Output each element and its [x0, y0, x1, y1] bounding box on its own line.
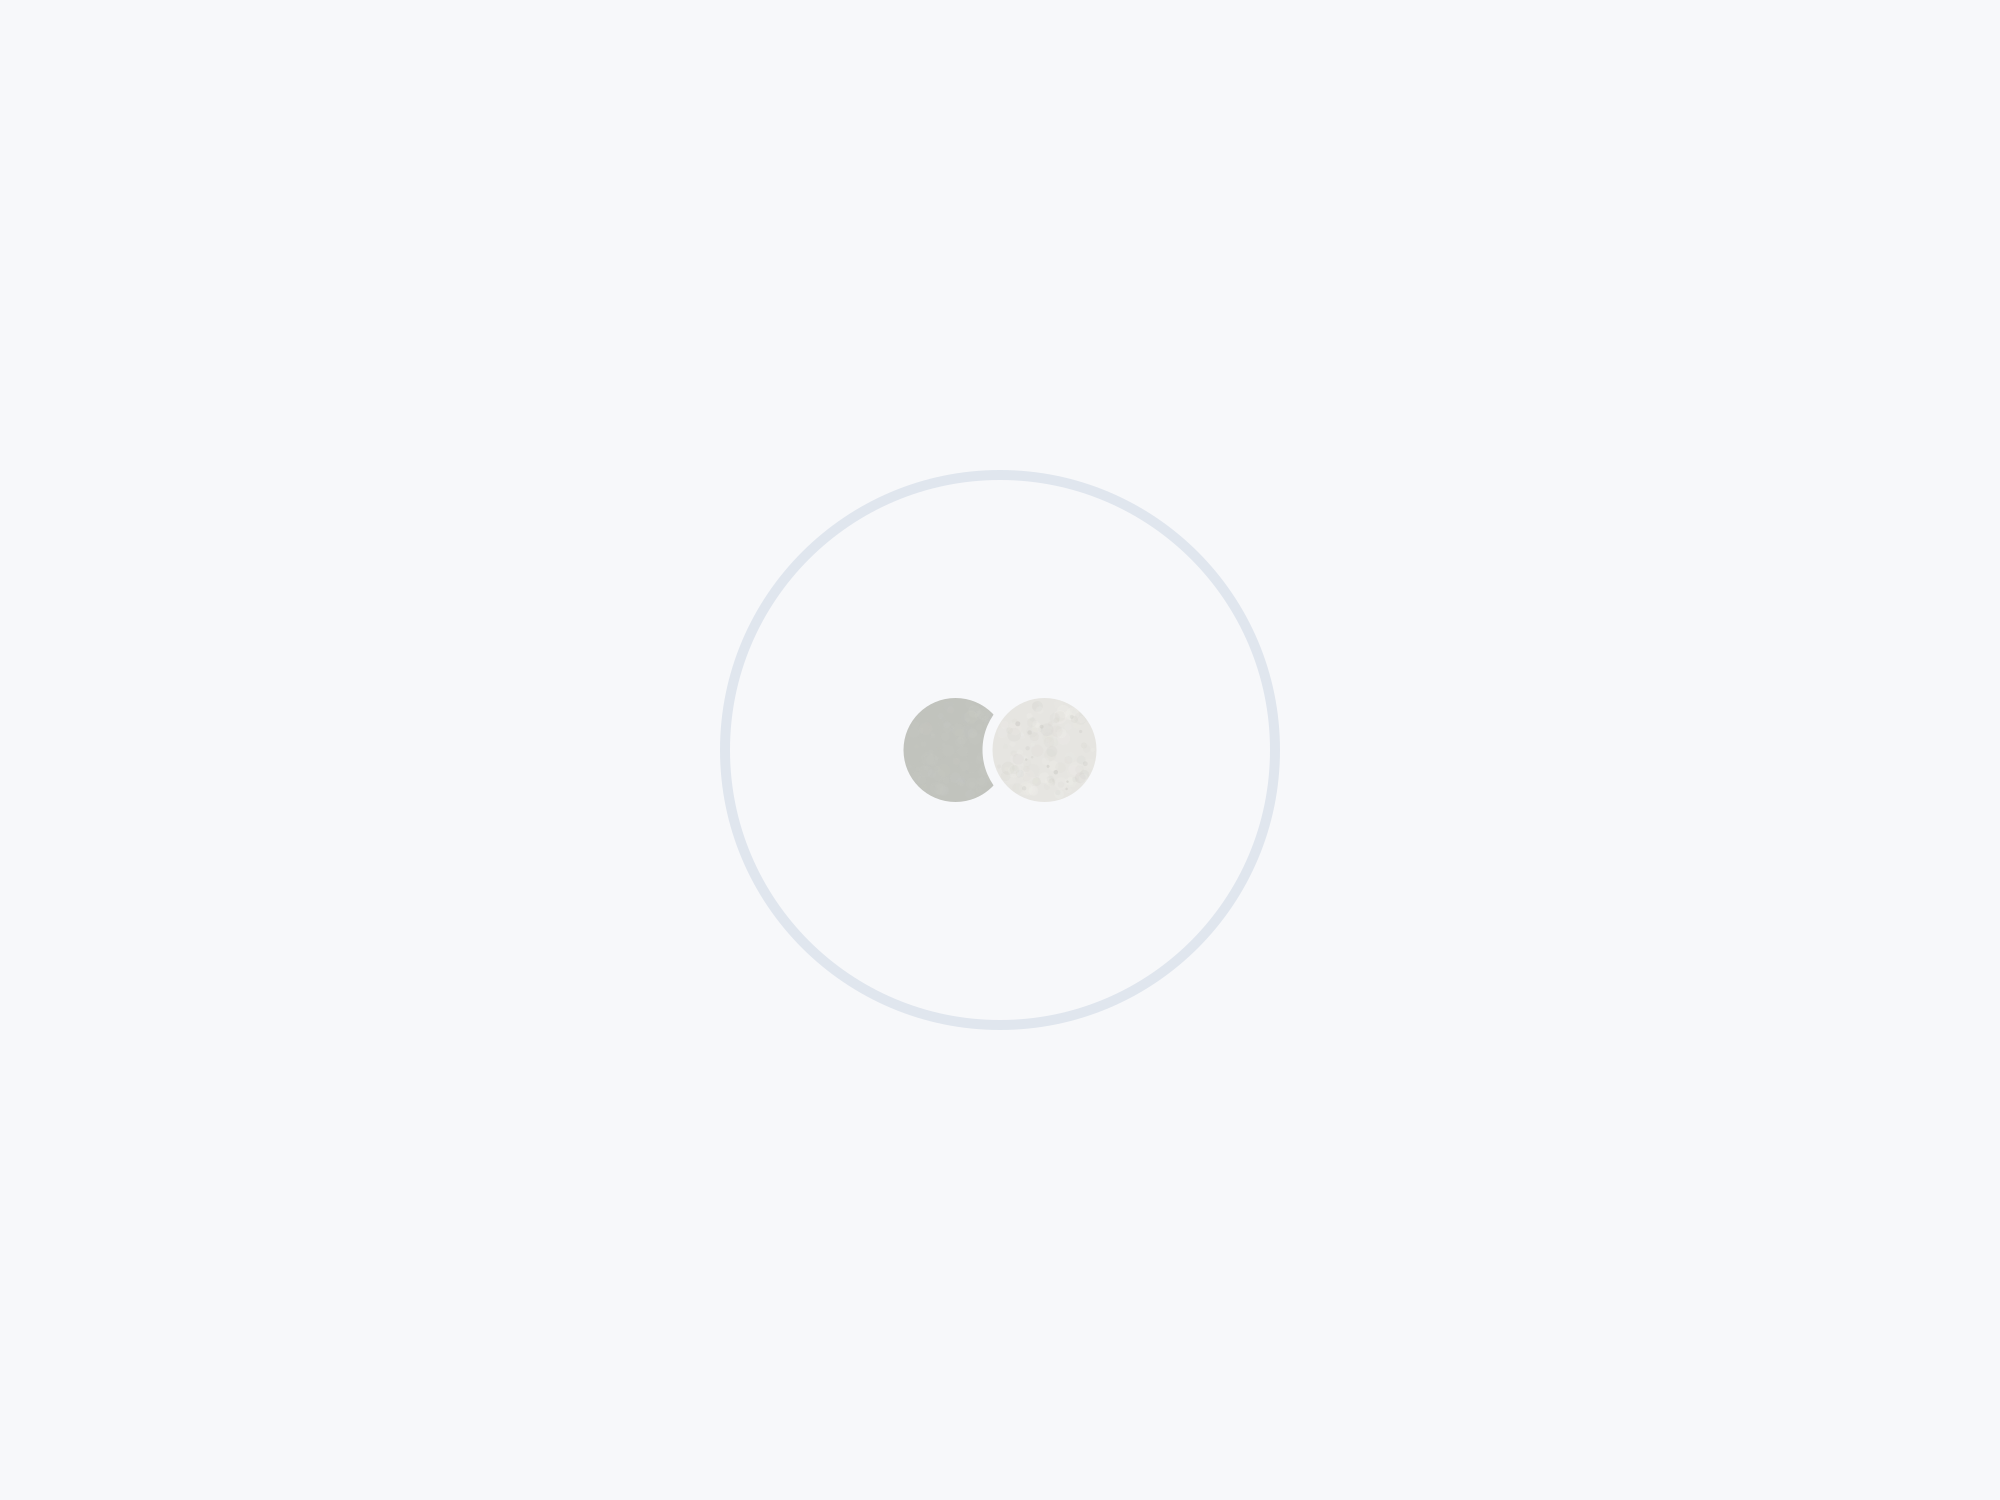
button[interactable]: Moon phase [725, 475, 1275, 1025]
